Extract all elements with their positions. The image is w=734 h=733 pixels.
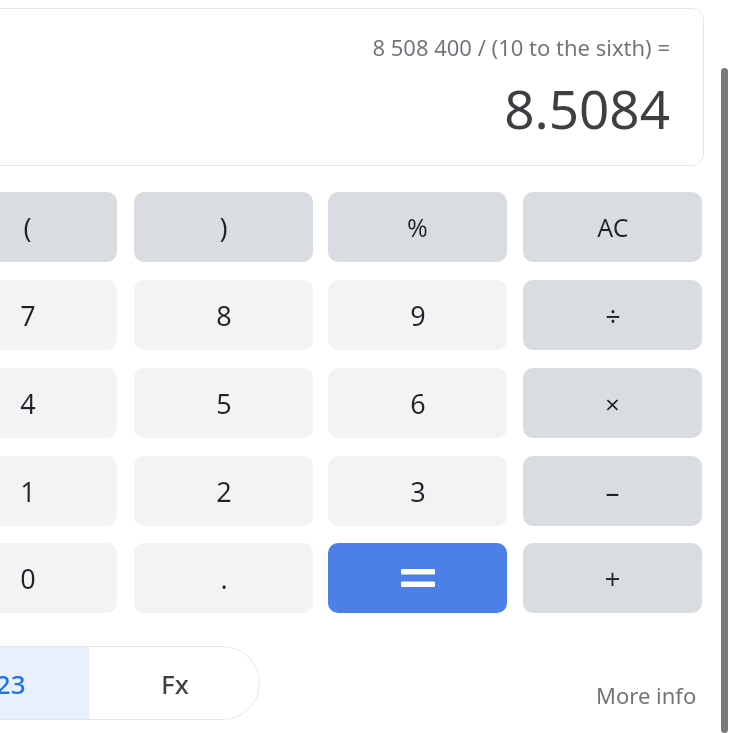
staticText: ÷ [605, 297, 621, 334]
button[interactable]: 0 [0, 543, 117, 613]
staticText: % [407, 210, 428, 244]
button[interactable]: 8 [134, 280, 313, 350]
staticText: 2 [216, 473, 232, 510]
staticText: – [605, 472, 620, 510]
staticText: 4 [20, 385, 36, 422]
button[interactable]: 123 [0, 646, 89, 720]
staticText: 7 [20, 297, 36, 334]
staticText: × [605, 386, 620, 421]
button[interactable]: . [134, 543, 313, 613]
staticText: 5 [216, 385, 232, 422]
staticText: 0 [20, 560, 36, 597]
button[interactable]: ÷ [523, 280, 702, 350]
button[interactable]: 2 [134, 456, 313, 526]
staticText: 8 508 400 / (10 to the sixth) = [372, 32, 670, 62]
staticText: . [220, 560, 228, 597]
staticText: 3 [410, 473, 426, 510]
button[interactable]: × [523, 368, 702, 438]
button[interactable]: More info [592, 676, 701, 714]
button[interactable]: 6 [328, 368, 507, 438]
button[interactable]: 9 [328, 280, 507, 350]
staticText: 8 [216, 297, 232, 334]
staticText: ( [23, 209, 32, 246]
staticText: 8.5084 [504, 72, 670, 144]
button[interactable]: 1 [0, 456, 117, 526]
staticText: ) [219, 209, 228, 246]
button[interactable]: ( [0, 192, 117, 262]
staticText: 9 [410, 297, 426, 334]
button[interactable]: AC [523, 192, 702, 262]
button[interactable]: 4 [0, 368, 117, 438]
button[interactable]: + [523, 543, 702, 613]
button[interactable]: 7 [0, 280, 117, 350]
button[interactable]: ) [134, 192, 313, 262]
staticText: Fx [161, 666, 189, 701]
staticText: 1 [20, 473, 36, 510]
staticText: + [604, 559, 621, 597]
staticText: 6 [410, 385, 426, 422]
button[interactable]: % [328, 192, 507, 262]
staticText: 123 [0, 666, 26, 701]
button[interactable]: 5 [134, 368, 313, 438]
button[interactable]: 3 [328, 456, 507, 526]
button[interactable]: Equals [328, 543, 507, 613]
staticText: AC [597, 210, 629, 244]
button[interactable]: Fx [89, 646, 260, 720]
button[interactable]: – [523, 456, 702, 526]
staticText: More info [596, 680, 697, 710]
